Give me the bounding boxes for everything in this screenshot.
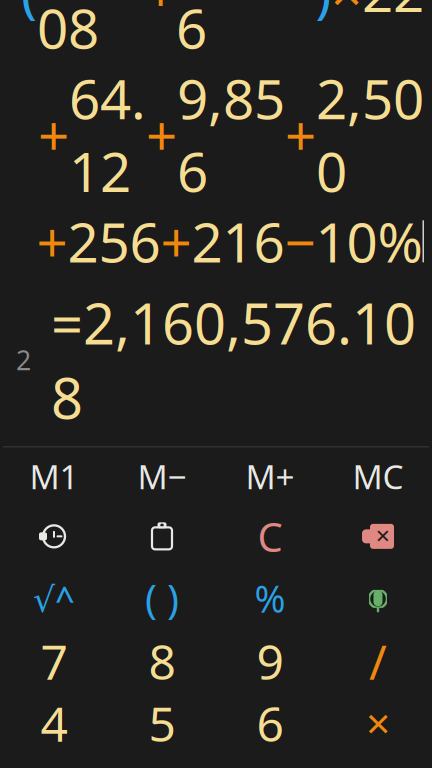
button[interactable]: History	[0, 505, 108, 567]
staticText: =2,160,576.108	[51, 286, 416, 434]
staticText: +	[146, 98, 177, 171]
button[interactable]: 6	[216, 691, 324, 753]
staticText: 10%	[315, 205, 422, 278]
staticText: 2	[16, 342, 31, 378]
staticText: 216	[191, 205, 284, 278]
staticText: C	[257, 510, 282, 563]
button[interactable]: 8	[108, 629, 216, 691]
button[interactable]: 4	[0, 691, 108, 753]
staticText: ( )	[145, 572, 179, 625]
button[interactable]: Backspace	[324, 505, 432, 567]
staticText: 64.12	[69, 62, 146, 207]
button[interactable]: √^	[0, 567, 108, 629]
button[interactable]: M−	[108, 447, 216, 505]
staticText: −	[284, 205, 315, 278]
staticText: ✕	[375, 526, 391, 547]
staticText: M+	[245, 454, 294, 498]
staticText: +	[145, 0, 176, 27]
button[interactable]: /	[324, 629, 432, 691]
staticText: 8	[148, 629, 175, 691]
staticText: +	[36, 205, 67, 278]
staticText: +	[285, 98, 316, 171]
button[interactable]: 5	[108, 691, 216, 753]
staticText: MC	[352, 454, 403, 498]
staticText: √^	[33, 575, 75, 621]
button[interactable]: ×	[324, 691, 432, 753]
button[interactable]: C	[216, 505, 324, 567]
staticText: 2,500	[316, 62, 424, 207]
button[interactable]: 9	[216, 629, 324, 691]
staticText: 92,426	[176, 0, 315, 64]
button[interactable]: ( )	[108, 567, 216, 629]
staticText: +	[160, 205, 191, 278]
staticText: %	[254, 574, 285, 623]
staticText: 9	[256, 629, 283, 691]
staticText: M−	[137, 454, 186, 498]
staticText: (	[21, 0, 37, 27]
staticText: 16,108	[37, 0, 145, 64]
button[interactable]: Paste	[108, 505, 216, 567]
button[interactable]: %	[216, 567, 324, 629]
staticText: )	[315, 0, 331, 27]
button[interactable]: M1	[0, 447, 108, 505]
button[interactable]: Voice input	[324, 567, 432, 629]
staticText: 256	[67, 205, 160, 278]
staticText: ×	[366, 694, 390, 751]
staticText: ×	[331, 0, 362, 27]
staticText: 6	[256, 691, 283, 753]
staticText: 4	[40, 691, 67, 753]
button[interactable]: MC	[324, 447, 432, 505]
staticText: +	[38, 98, 69, 171]
button[interactable]: M+	[216, 447, 324, 505]
staticText: 22	[362, 0, 424, 27]
staticText: /	[369, 629, 387, 691]
staticText: 9,856	[177, 62, 285, 207]
staticText: M1	[29, 454, 78, 498]
button[interactable]: 7	[0, 629, 108, 691]
staticText: 5	[148, 691, 175, 753]
staticText: 7	[40, 629, 67, 691]
